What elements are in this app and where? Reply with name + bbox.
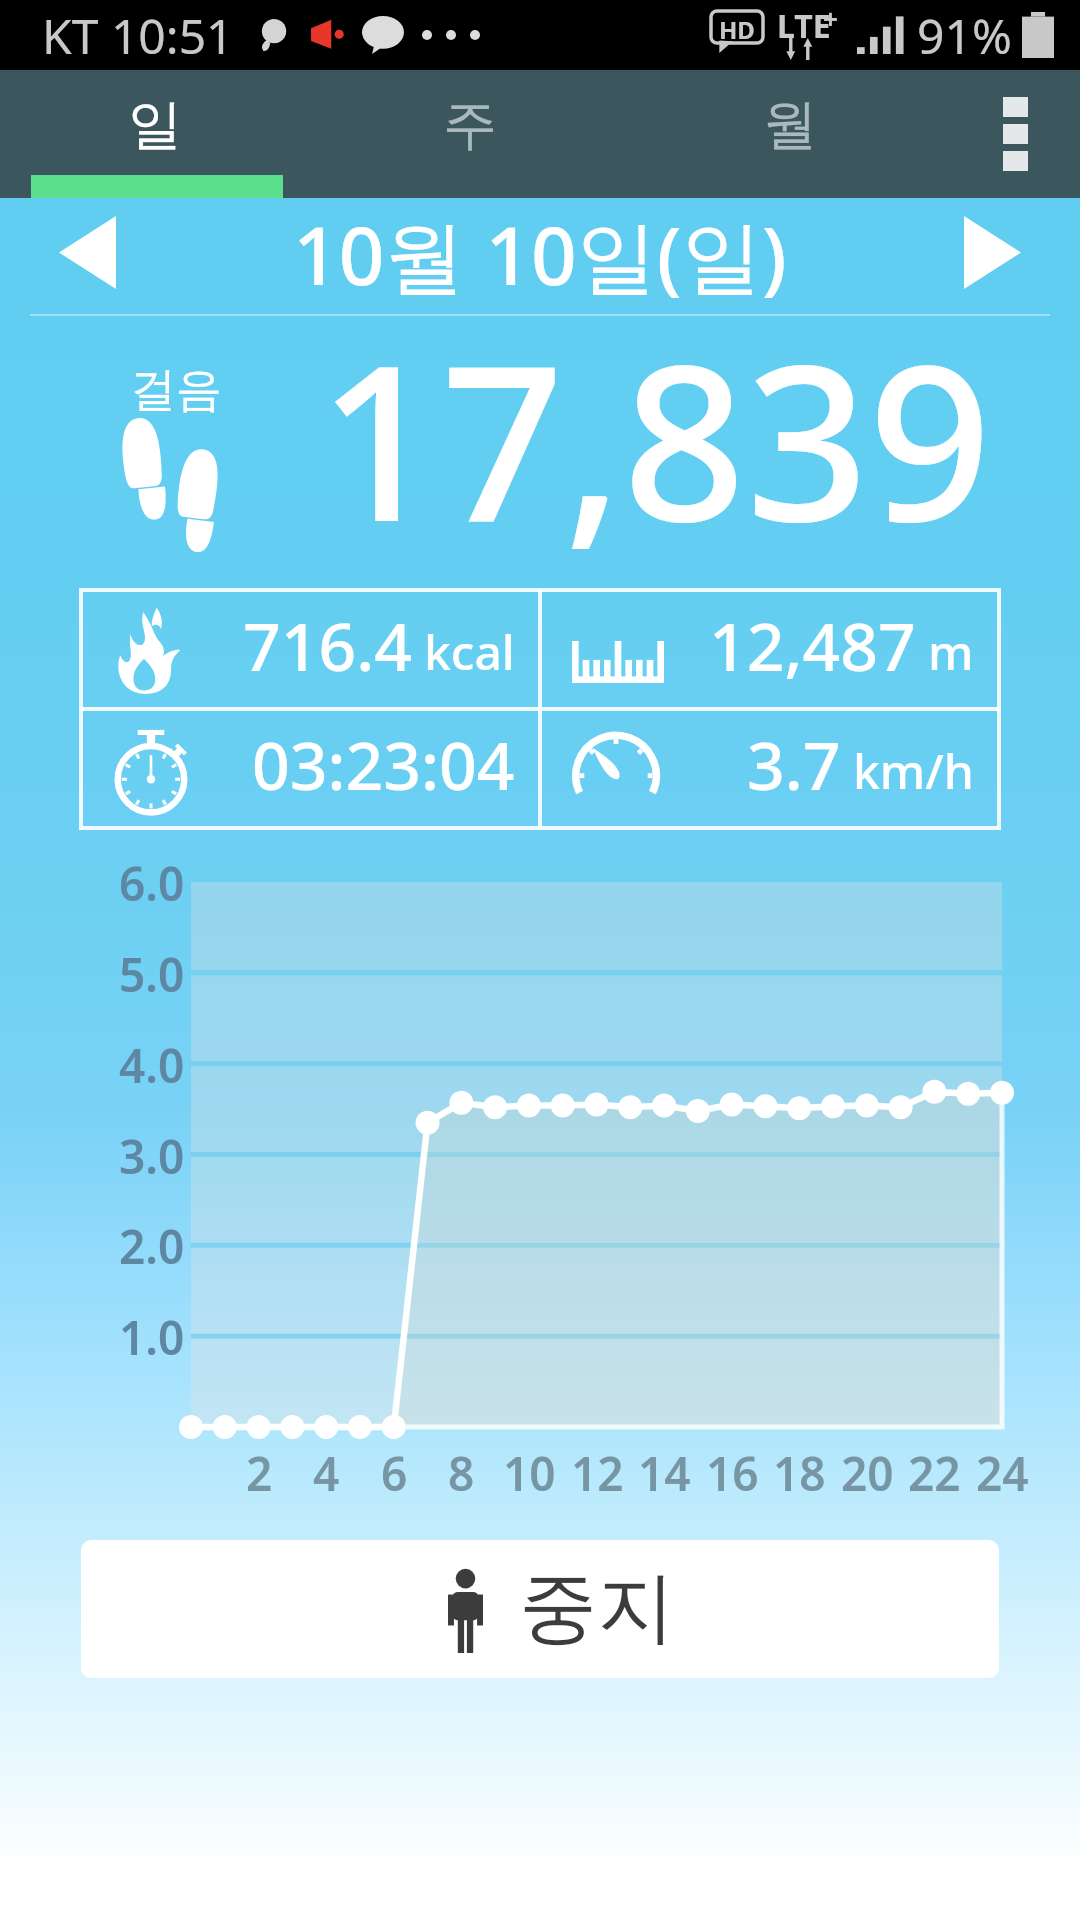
- staticText: 2.0: [119, 1215, 185, 1275]
- staticText: kcal: [424, 619, 515, 684]
- button[interactable]: Next day: [945, 198, 1040, 318]
- staticText: 22: [908, 1442, 961, 1498]
- staticText: 18: [773, 1442, 826, 1498]
- staticText: 주: [443, 91, 497, 159]
- button[interactable]: Previous day: [40, 198, 135, 318]
- button[interactable]: 중지: [81, 1540, 999, 1678]
- staticText: 1.0: [119, 1306, 185, 1366]
- staticText: 03:23:04: [252, 719, 515, 809]
- staticText: 91%: [917, 3, 1012, 68]
- button[interactable]: 주: [310, 70, 630, 198]
- staticText: 716.4: [243, 600, 412, 690]
- staticText: 10: [503, 1442, 556, 1498]
- staticText: 24: [976, 1442, 1029, 1498]
- button[interactable]: 월: [630, 70, 950, 198]
- staticText: 3.7: [747, 719, 841, 809]
- staticText: 20: [841, 1442, 894, 1498]
- staticText: 6.0: [119, 852, 185, 912]
- staticText: 14: [638, 1442, 691, 1498]
- staticText: LTE: [777, 4, 831, 48]
- staticText: km/h: [853, 738, 974, 803]
- staticText: 4: [313, 1442, 340, 1498]
- staticText: +: [823, 1, 838, 36]
- button[interactable]: 일: [0, 70, 310, 198]
- staticText: 10월 10일(일): [293, 199, 787, 308]
- staticText: 16: [706, 1442, 759, 1498]
- staticText: 12,487: [709, 600, 916, 690]
- staticText: 6: [381, 1442, 408, 1498]
- staticText: 5.0: [119, 943, 185, 1003]
- staticText: 일: [128, 91, 182, 159]
- staticText: m: [928, 619, 974, 684]
- staticText: 걸음: [130, 361, 222, 419]
- staticText: 8: [448, 1442, 475, 1498]
- staticText: KT 10:51: [42, 3, 234, 68]
- staticText: 월: [763, 91, 817, 159]
- staticText: 4.0: [119, 1034, 185, 1094]
- staticText: 2: [246, 1442, 273, 1498]
- staticText: 17,839: [318, 291, 992, 584]
- button[interactable]: More options: [950, 70, 1080, 198]
- staticText: HD: [719, 13, 755, 46]
- staticText: 중지: [519, 1559, 675, 1657]
- staticText: 12: [571, 1442, 624, 1498]
- staticText: 3.0: [119, 1125, 185, 1185]
